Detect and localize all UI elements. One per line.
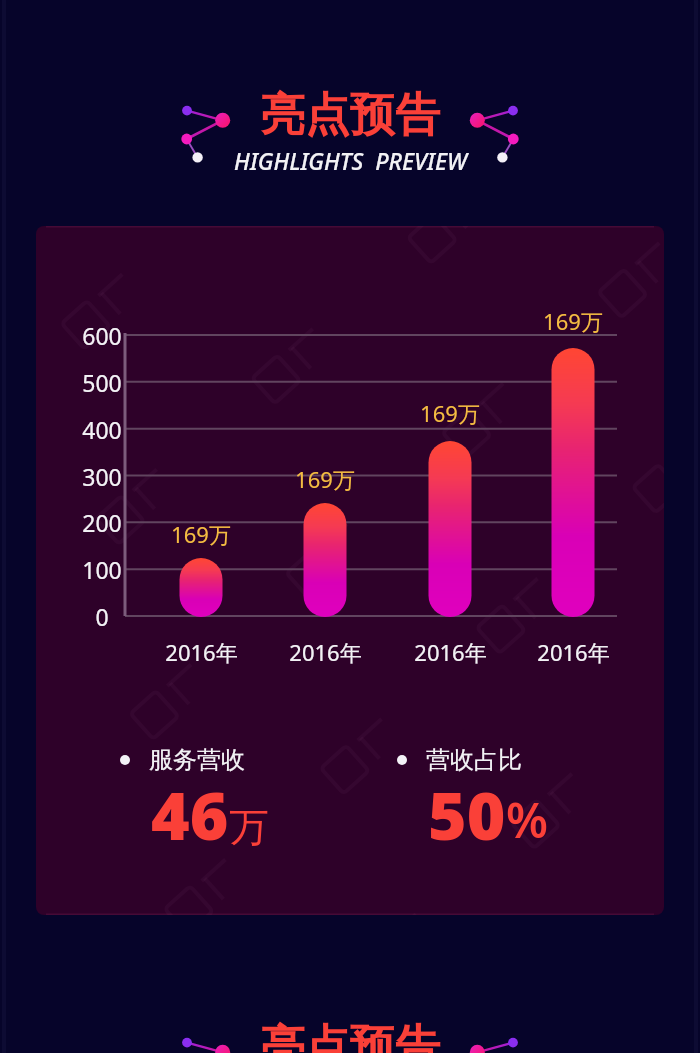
staticText: 169万 <box>295 464 355 494</box>
staticText: 100 <box>82 554 122 585</box>
staticText: 万 <box>229 802 269 852</box>
staticText: 0 <box>95 601 109 632</box>
staticText: % <box>506 787 549 852</box>
button[interactable]: 营收占比 <box>397 745 522 865</box>
staticText: 400 <box>82 414 122 445</box>
staticText: 营收占比 <box>426 745 522 775</box>
staticText: 500 <box>82 367 122 398</box>
staticText: 服务营收 <box>149 745 245 775</box>
staticText: 2016年 <box>165 637 238 667</box>
staticText: 46 <box>151 769 229 859</box>
staticText: HIGHLIGHTS PREVIEW <box>234 145 467 176</box>
staticText: 600 <box>82 320 122 351</box>
staticText: 50 <box>428 769 506 859</box>
staticText: 169万 <box>543 306 603 336</box>
staticText: 2016年 <box>414 637 487 667</box>
staticText: 300 <box>82 461 122 492</box>
staticText: 169万 <box>420 398 480 428</box>
staticText: 亮点预告 <box>260 87 440 144</box>
staticText: 2016年 <box>537 637 610 667</box>
staticText: 200 <box>82 507 122 538</box>
button[interactable]: 服务营收 <box>120 745 245 865</box>
staticText: 169万 <box>171 519 231 549</box>
staticText: 2016年 <box>289 637 362 667</box>
staticText: 亮点预告 <box>260 1019 440 1053</box>
